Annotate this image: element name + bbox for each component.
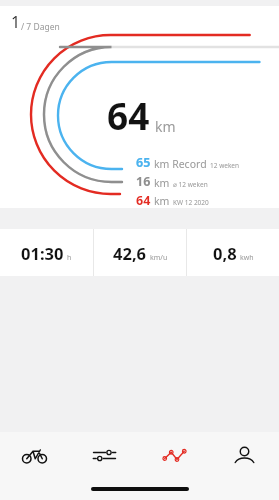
staticText: 65: [136, 154, 151, 171]
staticText: km: [155, 117, 176, 136]
staticText: km: [154, 176, 170, 190]
staticText: h: [67, 253, 72, 263]
button[interactable]: 01:30: [0, 229, 93, 276]
button[interactable]: Statistics: [139, 432, 209, 478]
button[interactable]: Profile: [209, 432, 279, 478]
staticText: / 7 Dagen: [21, 21, 60, 33]
staticText: ⌀ 12 weken: [173, 180, 208, 189]
staticText: km: [154, 194, 170, 208]
staticText: 12 weken: [210, 161, 240, 170]
staticText: km/u: [150, 253, 168, 263]
staticText: 0,8: [213, 242, 237, 264]
staticText: 16: [136, 173, 151, 190]
staticText: 1: [11, 11, 21, 33]
button[interactable]: 1: [0, 6, 279, 208]
button[interactable]: Bike: [0, 432, 69, 478]
button[interactable]: 42,6: [94, 229, 186, 276]
staticText: km Record: [154, 157, 207, 171]
staticText: 42,6: [113, 242, 147, 264]
button[interactable]: 0,8: [187, 229, 279, 276]
staticText: 01:30: [21, 242, 64, 264]
button[interactable]: Settings: [69, 432, 139, 478]
staticText: KW 12 2020: [173, 198, 209, 207]
staticText: kwh: [240, 253, 254, 263]
staticText: 64: [136, 192, 151, 208]
staticText: 64: [107, 90, 150, 140]
